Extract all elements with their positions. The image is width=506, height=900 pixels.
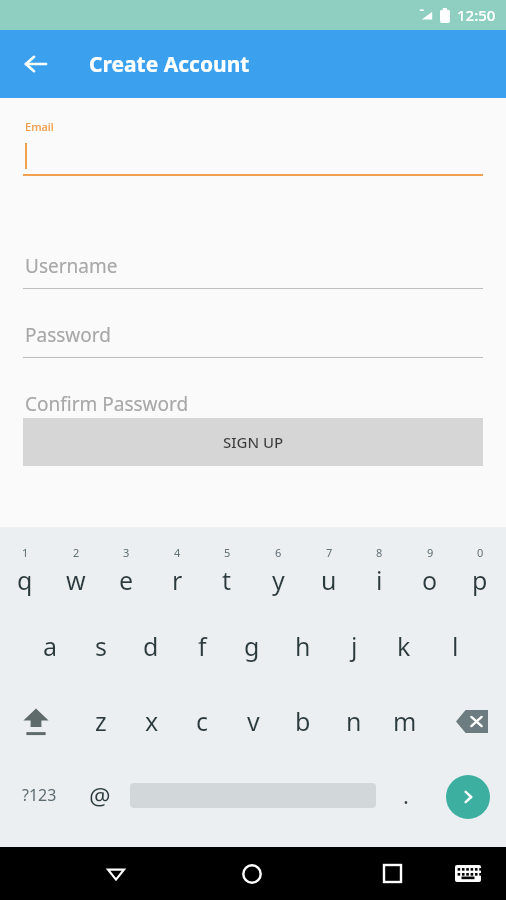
staticText: @ [89, 779, 111, 812]
staticText: k [397, 629, 411, 663]
staticText: e [119, 563, 134, 597]
button[interactable]: h [278, 615, 328, 677]
button[interactable]: Password [23, 312, 483, 358]
staticText: Create Account [89, 50, 250, 79]
staticText: a [43, 629, 58, 663]
staticText: Confirm Password [25, 391, 189, 417]
button[interactable]: 2 [51, 535, 101, 607]
staticText: o [422, 563, 438, 597]
button[interactable]: Enter [446, 775, 490, 819]
button[interactable]: d [126, 615, 176, 677]
staticText: 9 [427, 545, 434, 560]
button[interactable]: SIGN UP [23, 418, 483, 466]
staticText: x [145, 704, 159, 738]
button[interactable]: Email field [23, 98, 483, 178]
button[interactable]: v [228, 690, 278, 752]
staticText: 0 [477, 545, 484, 560]
button[interactable]: Keyboard [443, 847, 493, 900]
staticText: l [452, 629, 459, 663]
button[interactable]: 4 [152, 535, 202, 607]
staticText: SIGN UP [223, 432, 284, 452]
button[interactable]: Confirm Password [23, 381, 483, 427]
staticText: Username [25, 253, 118, 279]
staticText: w [66, 563, 86, 597]
button[interactable]: a [25, 615, 75, 677]
staticText: n [346, 704, 362, 738]
button[interactable]: 9 [405, 535, 455, 607]
staticText: c [196, 704, 209, 738]
button[interactable]: Shift [11, 690, 61, 752]
button[interactable]: j [329, 615, 379, 677]
button[interactable]: Username [23, 243, 483, 289]
button[interactable]: f [177, 615, 227, 677]
button[interactable]: ?123 [13, 770, 65, 820]
staticText: j [351, 629, 358, 663]
staticText: t [222, 563, 232, 597]
button[interactable]: 5 [202, 535, 252, 607]
staticText: 12:50 [457, 5, 496, 25]
button[interactable]: Home [222, 847, 282, 900]
staticText: f [198, 629, 207, 663]
button[interactable]: k [379, 615, 429, 677]
button[interactable]: g [227, 615, 277, 677]
staticText: u [321, 563, 337, 597]
button[interactable]: @ [76, 770, 124, 820]
staticText: s [95, 629, 107, 663]
button[interactable]: z [76, 690, 126, 752]
staticText: Email [25, 119, 54, 134]
staticText: 5 [224, 545, 231, 560]
staticText: 6 [275, 545, 282, 560]
button[interactable]: 6 [253, 535, 303, 607]
button[interactable]: b [278, 690, 328, 752]
button[interactable]: Back [86, 847, 146, 900]
staticText: v [247, 704, 260, 738]
button[interactable]: x [127, 690, 177, 752]
staticText: z [95, 704, 107, 738]
staticText: 7 [326, 545, 333, 560]
staticText: g [244, 629, 260, 663]
staticText: 1 [22, 545, 29, 560]
staticText: y [272, 563, 285, 597]
staticText: 4 [174, 545, 181, 560]
button[interactable]: Back [14, 42, 58, 86]
button[interactable]: m [380, 690, 430, 752]
staticText: i [376, 563, 383, 597]
staticText: d [143, 629, 159, 663]
button[interactable]: 1 [0, 535, 50, 607]
staticText: b [295, 704, 311, 738]
staticText: 3 [123, 545, 130, 560]
staticText: 8 [376, 545, 383, 560]
button[interactable]: n [329, 690, 379, 752]
button[interactable]: l [430, 615, 480, 677]
staticText: p [472, 563, 488, 597]
button[interactable]: s [76, 615, 126, 677]
staticText: Password [25, 322, 111, 348]
staticText: 2 [73, 545, 80, 560]
staticText: q [17, 563, 33, 597]
button[interactable]: c [177, 690, 227, 752]
button[interactable]: 8 [354, 535, 404, 607]
button[interactable]: Backspace [447, 690, 497, 752]
staticText: . [403, 780, 409, 810]
staticText: r [172, 563, 183, 597]
button[interactable]: 3 [101, 535, 151, 607]
button[interactable]: 0 [455, 535, 505, 607]
staticText: ?123 [22, 784, 57, 806]
staticText: m [393, 704, 417, 738]
button[interactable]: Recents [364, 847, 420, 900]
button[interactable]: . [386, 770, 426, 820]
button[interactable]: 7 [304, 535, 354, 607]
staticText: h [295, 629, 311, 663]
